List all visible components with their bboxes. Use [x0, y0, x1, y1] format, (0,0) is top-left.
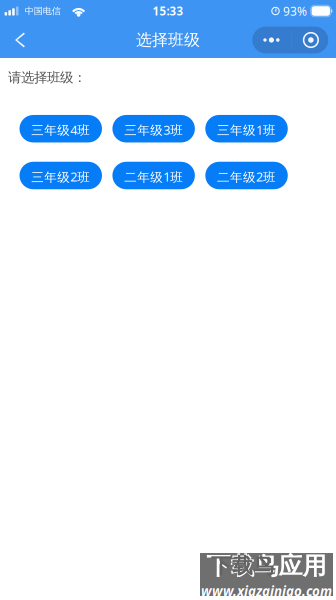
button[interactable]: 三年级4班: [19, 115, 102, 142]
staticText: 下载鸟: [211, 553, 274, 579]
staticText: 选择班级: [136, 30, 200, 50]
staticText: 请选择班级：: [8, 69, 86, 86]
staticText: 二年级2班: [217, 168, 276, 185]
staticText: 应用: [278, 551, 326, 581]
button[interactable]: 二年级1班: [112, 162, 195, 189]
staticText: www.xiazainiao.com: [201, 582, 332, 600]
staticText: 93%: [283, 3, 307, 19]
staticText: 三年级3班: [124, 121, 183, 138]
staticText: 中国电信: [25, 5, 61, 17]
button[interactable]: 三年级2班: [19, 162, 102, 189]
staticText: 三年级1班: [217, 121, 276, 138]
button[interactable]: 三年级3班: [112, 115, 195, 142]
button[interactable]: 二年级2班: [205, 162, 288, 189]
staticText: 三年级2班: [31, 168, 90, 185]
button[interactable]: 更多: [252, 27, 328, 53]
button[interactable]: 三年级1班: [205, 115, 288, 142]
staticText: 15:33: [152, 3, 183, 19]
staticText: 三年级4班: [31, 121, 90, 138]
staticText: 下载鸟: [206, 551, 278, 581]
staticText: 二年级1班: [124, 168, 183, 185]
button[interactable]: 返回: [0, 22, 35, 58]
